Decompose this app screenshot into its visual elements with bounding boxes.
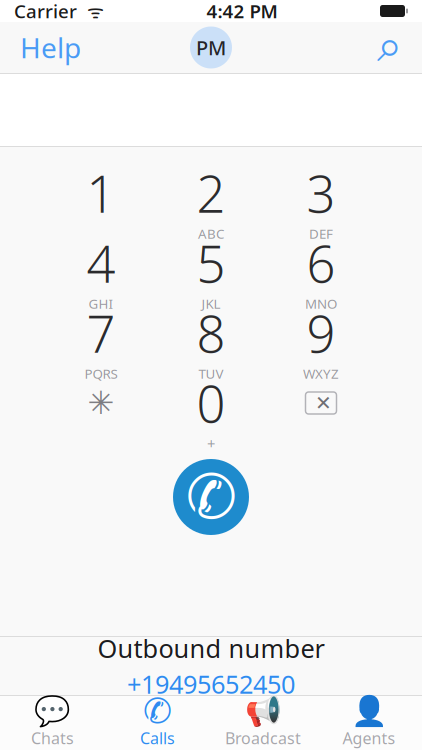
staticText: 1 (86, 159, 115, 227)
button[interactable]: Outbound number (0, 637, 422, 695)
button[interactable]: 2 (156, 165, 266, 235)
button[interactable]: 4 (46, 235, 156, 305)
button[interactable]: 9 (266, 305, 376, 375)
staticText: ⌕ (377, 25, 402, 70)
staticText: Carrier ᯤ (14, 0, 104, 23)
button[interactable]: 👤 (316, 696, 422, 750)
button[interactable]: 3 (266, 165, 376, 235)
staticText: PM (196, 34, 226, 61)
staticText: ✕ (315, 392, 332, 414)
button[interactable]: Star (46, 375, 156, 445)
staticText: 6 (306, 229, 335, 297)
staticText: 8 (196, 299, 225, 367)
button[interactable]: Profile P M (190, 26, 232, 68)
button[interactable]: Call (165, 451, 257, 543)
staticText: Outbound number (97, 631, 324, 665)
staticText: JKL (201, 295, 220, 312)
staticText: + (207, 434, 215, 453)
staticText: 4 (86, 229, 115, 297)
staticText: ✆ (143, 691, 172, 730)
button[interactable]: 📢 (210, 696, 316, 750)
staticText: 0 (196, 369, 225, 437)
staticText: Calls (140, 727, 175, 749)
button[interactable]: 7 (46, 305, 156, 375)
staticText: 4:42 PM (206, 0, 277, 23)
staticText: 💬 (34, 694, 71, 728)
button[interactable]: 0 (156, 375, 266, 445)
staticText: +19495652450 (127, 667, 295, 701)
staticText: 2 (196, 159, 225, 227)
button[interactable]: 1 (46, 165, 156, 235)
staticText: MNO (305, 295, 337, 312)
button[interactable]: Search (357, 23, 422, 72)
staticText: DEF (309, 225, 333, 242)
button[interactable]: ✆ (105, 696, 210, 750)
staticText: 3 (306, 159, 335, 227)
staticText: 5 (196, 229, 225, 297)
button[interactable]: 5 (156, 235, 266, 305)
staticText: PQRS (84, 365, 117, 382)
button[interactable]: 8 (156, 305, 266, 375)
staticText: 👤 (350, 694, 387, 728)
button[interactable]: Help (0, 17, 101, 78)
staticText: 📢 (244, 694, 281, 728)
staticText: ✳ (87, 385, 114, 421)
staticText: 9 (306, 299, 335, 367)
staticText: Help (20, 29, 81, 66)
button[interactable]: 💬 (0, 696, 105, 750)
staticText: Chats (31, 727, 74, 749)
staticText: ABC (198, 225, 224, 242)
button[interactable]: Delete (266, 375, 376, 445)
staticText: 7 (86, 299, 115, 367)
staticText: TUV (198, 365, 223, 382)
staticText: GHI (88, 295, 113, 312)
staticText: WXYZ (303, 365, 339, 382)
staticText: ✆ (185, 462, 236, 532)
button[interactable]: 6 (266, 235, 376, 305)
staticText: Broadcast (225, 727, 301, 749)
staticText: Agents (342, 727, 395, 749)
